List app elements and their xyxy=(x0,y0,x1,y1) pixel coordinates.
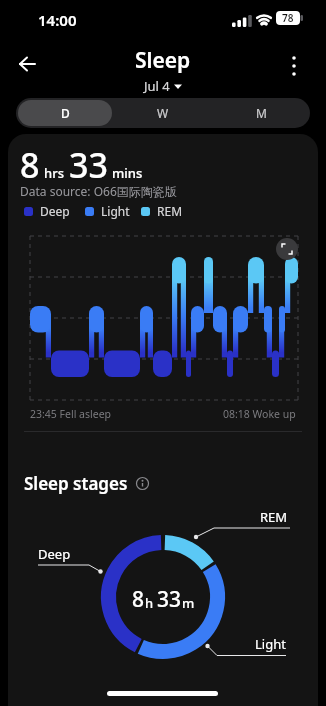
staticText: 14:00 xyxy=(38,10,77,30)
button[interactable]: D xyxy=(18,100,112,126)
staticText: m xyxy=(182,594,195,612)
staticText: Light xyxy=(255,635,286,653)
staticText: Light xyxy=(101,203,130,219)
staticText: W xyxy=(157,105,169,121)
button[interactable]: M xyxy=(212,98,310,128)
button[interactable]: W xyxy=(114,98,212,128)
staticText: mins xyxy=(112,164,143,182)
staticText: 33 xyxy=(69,142,108,188)
staticText: hrs xyxy=(44,164,64,182)
staticText: D xyxy=(61,105,70,121)
staticText: Sleep xyxy=(135,46,191,75)
staticText: Jul 4 xyxy=(144,77,170,95)
staticText: M xyxy=(256,105,267,121)
button[interactable]: Jul 4 xyxy=(144,77,182,95)
staticText: 08:18 Woke up xyxy=(223,407,296,421)
staticText: h xyxy=(145,594,157,612)
staticText: REM xyxy=(260,508,288,526)
staticText: 8 xyxy=(20,142,40,188)
staticText: 78 xyxy=(282,11,294,25)
staticText: Deep xyxy=(40,203,70,219)
staticText: Data source: O66国际陶瓷版 xyxy=(20,183,177,199)
button[interactable] xyxy=(12,52,46,78)
staticText: 8 xyxy=(132,585,145,614)
staticText: 33 xyxy=(157,585,182,614)
staticText: 23:45 Fell asleep xyxy=(30,407,112,421)
staticText: Deep xyxy=(38,545,71,563)
staticText: Sleep stages xyxy=(24,472,128,495)
staticText: REM xyxy=(157,203,183,219)
button[interactable] xyxy=(282,54,306,78)
